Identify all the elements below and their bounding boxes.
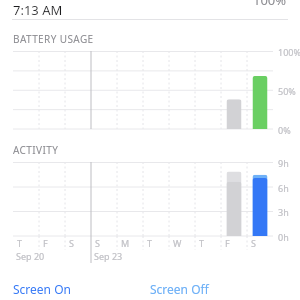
staticText: ACTIVITY xyxy=(13,143,59,157)
staticText: Sep 23 xyxy=(94,250,123,262)
button[interactable]: Screen On xyxy=(13,281,150,300)
staticText: 3h xyxy=(278,206,289,218)
staticText: 7:13 AM xyxy=(13,1,63,19)
staticText: Sep 20 xyxy=(16,250,45,262)
staticText: T xyxy=(199,237,205,249)
staticText: S xyxy=(69,237,74,249)
staticText: 50% xyxy=(278,85,296,97)
staticText: S xyxy=(95,237,100,249)
staticText: 100% xyxy=(253,0,287,9)
staticText: 9h xyxy=(278,157,289,169)
staticText: 0% xyxy=(278,124,291,136)
staticText: W xyxy=(173,237,182,249)
button[interactable]: Screen Off xyxy=(150,281,280,300)
staticText: T xyxy=(147,237,153,249)
staticText: Screen Off xyxy=(150,281,209,297)
staticText: 6h xyxy=(278,182,289,194)
staticText: F xyxy=(43,237,48,249)
staticText: Screen On xyxy=(13,281,71,297)
staticText: M xyxy=(121,237,130,249)
staticText: 100% xyxy=(278,46,300,58)
staticText: S xyxy=(251,237,256,249)
staticText: T xyxy=(17,237,23,249)
staticText: BATTERY USAGE xyxy=(13,32,94,46)
staticText: 0h xyxy=(278,231,289,243)
staticText: F xyxy=(225,237,230,249)
